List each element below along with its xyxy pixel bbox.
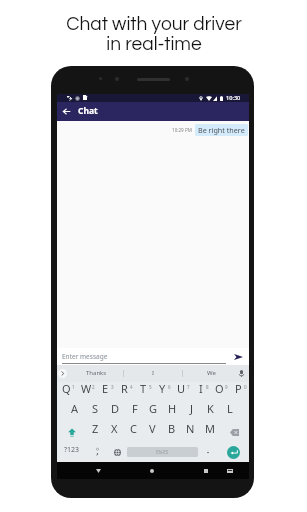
staticText: 9 <box>225 384 228 390</box>
button[interactable]: W <box>77 382 97 402</box>
button[interactable]: R <box>116 382 135 402</box>
staticText: in real-time <box>106 34 202 54</box>
button[interactable]: X <box>105 422 124 442</box>
button[interactable]: Home <box>147 466 157 476</box>
staticText: 10:29 PM <box>172 127 192 133</box>
button[interactable]: Backspace <box>219 422 249 442</box>
staticText: 3 <box>111 384 114 390</box>
button[interactable]: L <box>221 402 240 422</box>
staticText: O <box>215 381 224 396</box>
staticText: 8 <box>206 384 209 390</box>
button[interactable]: C <box>124 422 143 442</box>
button[interactable]: Send <box>231 348 245 365</box>
button[interactable]: Keyboard <box>225 466 235 476</box>
staticText: EN-ES <box>156 449 169 455</box>
button[interactable]: S <box>86 402 106 422</box>
staticText: U <box>177 381 186 396</box>
staticText: S <box>92 401 99 416</box>
button[interactable]: M <box>200 422 219 442</box>
staticText: Chat <box>78 105 98 117</box>
staticText: H <box>168 401 177 416</box>
staticText: L <box>227 401 233 416</box>
button[interactable]: We <box>183 365 234 382</box>
button[interactable]: EN-ES <box>127 447 198 457</box>
button[interactable]: Recents <box>201 466 211 476</box>
staticText: R <box>121 381 128 396</box>
staticText: We <box>207 369 216 377</box>
staticText: Z <box>92 421 99 436</box>
staticText: B <box>168 421 176 436</box>
button[interactable]: Back <box>93 466 103 476</box>
staticText: 1 <box>72 384 75 390</box>
staticText: Y <box>159 381 166 396</box>
button[interactable]: ?123 <box>57 442 87 462</box>
button[interactable]: F <box>126 402 145 422</box>
staticText: 0 <box>244 384 247 390</box>
button[interactable]: G <box>145 402 164 422</box>
button[interactable]: N <box>181 422 200 442</box>
button[interactable]: V <box>143 422 162 442</box>
button[interactable]: U <box>173 382 192 402</box>
button[interactable]: Voice input <box>234 365 249 382</box>
button[interactable]: T <box>135 382 154 402</box>
staticText: 2 <box>92 384 95 390</box>
button[interactable]: I <box>192 382 211 402</box>
staticText: W <box>81 381 92 396</box>
button[interactable]: Z <box>86 422 105 442</box>
staticText: M <box>205 421 215 436</box>
staticText: X <box>111 421 118 436</box>
button[interactable]: J <box>183 402 202 422</box>
staticText: Thanks <box>86 369 107 377</box>
staticText: 5 <box>149 384 152 390</box>
button[interactable]: E <box>97 382 116 402</box>
staticText: A <box>71 401 79 416</box>
button[interactable]: I <box>124 365 182 382</box>
button[interactable]: H <box>164 402 183 422</box>
staticText: 10:30 <box>226 94 241 102</box>
button[interactable]: Enter <box>218 442 249 462</box>
staticText: E <box>102 381 109 396</box>
staticText: Chat with your driver <box>66 14 242 34</box>
staticText: G <box>149 401 158 416</box>
button[interactable]: Thanks <box>68 365 123 382</box>
staticText: P <box>235 381 242 396</box>
staticText: Be right there <box>198 125 245 135</box>
button[interactable]: Q <box>57 382 77 402</box>
staticText: I <box>199 381 203 396</box>
staticText: 6 <box>168 384 171 390</box>
button[interactable]: B <box>162 422 181 442</box>
button[interactable]: K <box>202 402 221 422</box>
button[interactable]: P <box>230 382 249 402</box>
button[interactable]: Y <box>154 382 173 402</box>
staticText: ?123 <box>64 445 80 455</box>
staticText: V <box>149 421 156 436</box>
staticText: I <box>152 369 155 377</box>
staticText: 4 <box>130 384 133 390</box>
staticText: D <box>111 401 120 416</box>
button[interactable]: O <box>211 382 230 402</box>
button[interactable]: Period <box>198 442 218 462</box>
staticText: 7 <box>187 384 190 390</box>
staticText: F <box>132 401 138 416</box>
button[interactable]: Expand suggestions <box>57 365 68 382</box>
staticText: K <box>207 401 214 416</box>
button[interactable]: Change language <box>107 442 127 462</box>
button[interactable]: Back <box>57 102 75 121</box>
button[interactable]: Shift <box>57 422 86 442</box>
button[interactable]: D <box>106 402 126 422</box>
staticText: T <box>140 381 147 396</box>
staticText: Q <box>62 381 71 396</box>
staticText: C <box>130 421 137 436</box>
staticText: N <box>186 421 195 436</box>
button[interactable]: Comma <box>87 442 107 462</box>
staticText: Enter message <box>62 352 108 361</box>
staticText: J <box>190 401 194 416</box>
button[interactable]: A <box>66 402 86 422</box>
